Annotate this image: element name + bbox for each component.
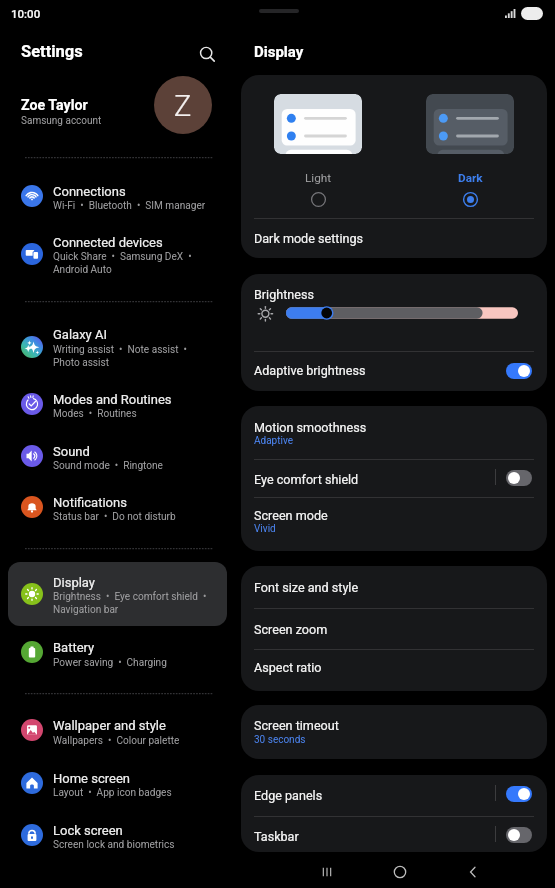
staticText: Screen timeout [254, 717, 339, 734]
staticText: Brightness • Eye comfort shield • Naviga… [53, 589, 228, 615]
button[interactable] [8, 765, 225, 803]
button[interactable] [241, 459, 547, 496]
button[interactable] [241, 406, 547, 458]
staticText: Home screen [53, 769, 130, 786]
button[interactable]: Edge panels [506, 786, 532, 802]
staticText: Writing assist • Note assist • Photo ass… [53, 342, 228, 368]
button[interactable] [241, 705, 547, 758]
staticText: Dark [458, 170, 483, 186]
staticText: Display [254, 41, 304, 61]
staticText: Settings [21, 40, 83, 62]
staticText: Display [53, 573, 95, 590]
button[interactable] [8, 489, 225, 527]
button[interactable] [8, 817, 225, 855]
staticText: Screen lock and biometrics [53, 837, 228, 850]
button[interactable] [241, 649, 547, 690]
staticText: Brightness [254, 286, 314, 303]
button[interactable] [8, 562, 227, 626]
staticText: Connected devices [53, 233, 163, 250]
button[interactable] [8, 635, 225, 673]
staticText: Battery [53, 638, 95, 655]
staticText: 10:00 [11, 6, 41, 21]
staticText: Z [174, 86, 192, 124]
staticText: Connections [53, 182, 126, 199]
staticText: Zoe Taylor [21, 95, 88, 114]
button[interactable] [241, 566, 547, 607]
button[interactable] [8, 438, 225, 476]
staticText: Samsung account [21, 114, 102, 127]
staticText: Motion smoothness [254, 419, 367, 436]
staticText: Edge panels [254, 787, 323, 804]
staticText: Modes and Routines [53, 390, 172, 407]
button[interactable]: Home [376, 856, 424, 888]
staticText: Aspect ratio [254, 659, 322, 676]
staticText: Modes • Routines [53, 406, 228, 419]
staticText: Lock screen [53, 821, 123, 838]
staticText: Power saving • Charging [53, 655, 228, 668]
button[interactable]: Recents [303, 856, 351, 888]
staticText: Galaxy AI [53, 325, 107, 342]
staticText: Screen mode [254, 507, 328, 524]
staticText: Layout • App icon badges [53, 785, 228, 798]
staticText: Light [305, 170, 332, 186]
button[interactable] [8, 322, 225, 372]
staticText: Screen zoom [254, 621, 328, 638]
button[interactable] [8, 713, 225, 751]
staticText: Wallpapers • Colour palette [53, 733, 228, 746]
button[interactable]: Adaptive brightness [506, 363, 532, 379]
button[interactable] [241, 608, 547, 648]
button[interactable] [8, 178, 225, 216]
staticText: Taskbar [254, 828, 299, 845]
button[interactable]: Zoe Taylor [0, 76, 238, 136]
staticText: Status bar • Do not disturb [53, 509, 228, 522]
staticText: Notifications [53, 493, 127, 510]
staticText: Wi-Fi • Bluetooth • SIM manager [53, 198, 228, 211]
button[interactable] [241, 816, 547, 851]
button[interactable] [8, 229, 225, 279]
button[interactable]: Search [194, 41, 220, 67]
button[interactable]: Eye comfort shield [506, 470, 532, 486]
staticText: 30 seconds [254, 733, 306, 746]
button[interactable]: Back [449, 856, 497, 888]
button[interactable] [241, 497, 547, 550]
button[interactable]: Taskbar [506, 827, 532, 843]
staticText: Adaptive [254, 434, 294, 447]
staticText: Eye comfort shield [254, 471, 359, 488]
button[interactable] [241, 351, 547, 391]
button[interactable]: Brightness [286, 304, 518, 322]
staticText: Sound mode • Ringtone [53, 458, 228, 471]
button[interactable] [426, 93, 514, 207]
staticText: Dark mode settings [254, 230, 364, 247]
staticText: Adaptive brightness [254, 362, 366, 379]
staticText: Quick Share • Samsung DeX • Android Auto [53, 249, 228, 275]
button[interactable] [274, 93, 362, 207]
staticText: Font size and style [254, 579, 359, 596]
button[interactable] [241, 218, 547, 258]
staticText: Wallpaper and style [53, 716, 166, 733]
button[interactable] [241, 775, 547, 815]
button[interactable] [8, 386, 225, 424]
staticText: Sound [53, 442, 90, 459]
staticText: Vivid [254, 522, 276, 535]
